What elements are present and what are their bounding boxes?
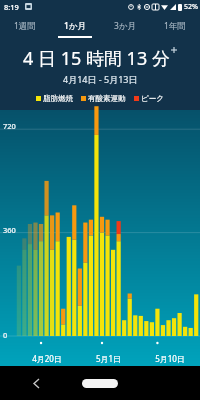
staticText: 3か月 — [114, 20, 137, 32]
staticText: 4月20日 — [17, 353, 77, 364]
button[interactable]: 1か月 — [50, 13, 100, 39]
button[interactable]: 1週間 — [0, 13, 50, 39]
staticText: 脂肪燃焼 — [43, 94, 73, 103]
button[interactable]: 3か月 — [100, 13, 150, 39]
staticText: 0 — [3, 330, 8, 340]
staticText: 360 — [3, 225, 16, 235]
staticText: 1か月 — [64, 20, 87, 32]
button[interactable]: 720 — [0, 110, 200, 366]
staticText: 8:19 — [4, 2, 19, 12]
staticText: 4 日 15 時間 13 分 — [23, 46, 170, 71]
staticText: 720 — [3, 121, 16, 131]
button[interactable]: Home — [82, 379, 118, 388]
staticText: 1年間 — [164, 20, 186, 32]
staticText: 1週間 — [14, 20, 36, 32]
staticText: 5月1日 — [77, 353, 140, 364]
button[interactable]: 1年間 — [150, 13, 200, 39]
button[interactable]: Back — [26, 373, 46, 393]
staticText: 4月14日 - 5月13日 — [63, 73, 138, 85]
staticText: 有酸素運動 — [88, 94, 126, 103]
other: Details — [171, 47, 177, 53]
button[interactable]: 脂肪燃焼 — [36, 94, 73, 103]
staticText: 52% — [184, 2, 198, 12]
staticText: ピーク — [141, 94, 164, 103]
button[interactable]: 有酸素運動 — [81, 94, 126, 103]
staticText: 5月10日 — [140, 353, 200, 364]
button[interactable]: ピーク — [134, 94, 164, 103]
